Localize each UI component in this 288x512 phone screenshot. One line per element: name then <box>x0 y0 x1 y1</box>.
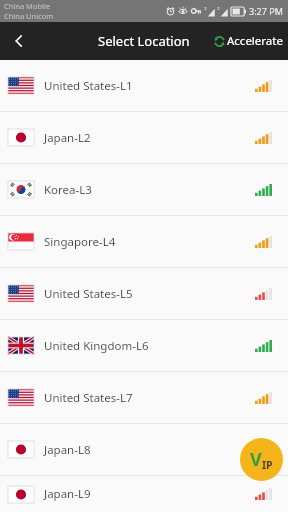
staticText: China Mobile <box>4 1 51 11</box>
button[interactable]: Korea-L3 <box>0 164 288 215</box>
button[interactable]: Singapore-L4 <box>0 216 288 267</box>
button[interactable]: United States-L5 <box>0 268 288 319</box>
staticText: Japan-L9 <box>44 486 91 502</box>
button[interactable]: Japan-L8 <box>0 424 288 475</box>
staticText: China Unicom <box>4 11 54 21</box>
staticText: Korea-L3 <box>44 182 92 198</box>
staticText: United Kingdom-L6 <box>44 338 149 354</box>
staticText: United States-L7 <box>44 390 133 406</box>
button[interactable]: Back <box>0 22 38 60</box>
button[interactable]: United States-L7 <box>0 372 288 423</box>
staticText: Select Location <box>98 32 190 50</box>
button[interactable]: VIP <box>240 438 283 481</box>
staticText: Singapore-L4 <box>44 234 116 250</box>
staticText: 3:27 PM <box>249 5 283 17</box>
button[interactable]: United Kingdom-L6 <box>0 320 288 371</box>
staticText: Japan-L8 <box>44 442 91 458</box>
button[interactable]: United States-L1 <box>0 60 288 111</box>
button[interactable]: Accelerate <box>211 28 285 54</box>
staticText: Accelerate <box>227 33 283 49</box>
staticText: United States-L1 <box>44 78 133 94</box>
button[interactable]: Japan-L9 <box>0 476 288 512</box>
staticText: Japan-L2 <box>44 130 91 146</box>
staticText: IP <box>262 458 273 472</box>
staticText: V <box>250 447 262 472</box>
staticText: United States-L5 <box>44 286 133 302</box>
button[interactable]: Japan-L2 <box>0 112 288 163</box>
